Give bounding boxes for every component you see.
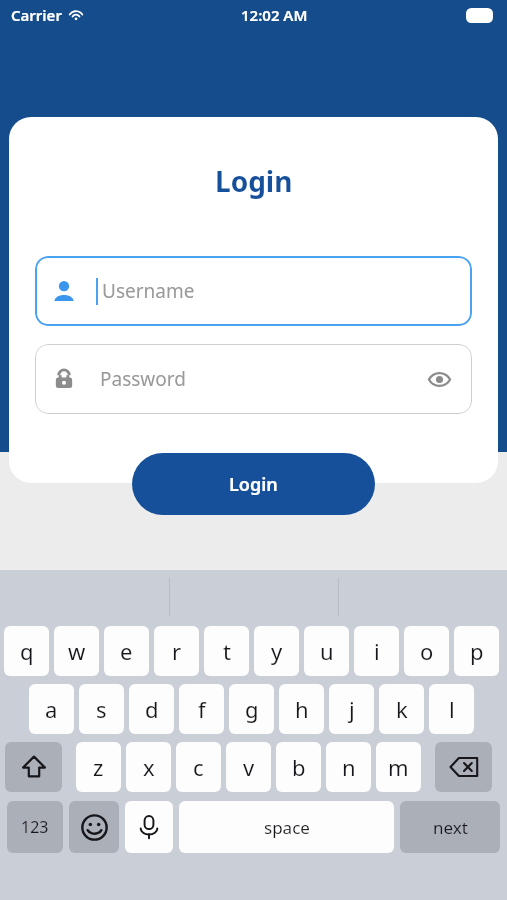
button[interactable]: c: [176, 742, 221, 792]
staticText: 12:02 AM: [241, 5, 308, 25]
staticText: z: [93, 752, 104, 782]
button[interactable]: l: [429, 684, 474, 734]
staticText: c: [193, 752, 204, 782]
staticText: 123: [21, 816, 49, 838]
staticText: y: [271, 636, 283, 666]
button[interactable]: z: [76, 742, 121, 792]
staticText: i: [374, 636, 380, 666]
button[interactable]: u: [304, 626, 349, 676]
staticText: l: [449, 694, 455, 724]
button[interactable]: 123: [7, 801, 63, 853]
button[interactable]: Backspace: [435, 742, 492, 792]
button[interactable]: Shift: [5, 742, 62, 792]
staticText: q: [20, 636, 34, 666]
button[interactable]: Username: [35, 256, 472, 326]
staticText: space: [264, 816, 310, 839]
staticText: Password: [100, 366, 186, 392]
staticText: v: [243, 752, 255, 782]
staticText: k: [396, 694, 408, 724]
staticText: s: [96, 694, 107, 724]
staticText: d: [145, 694, 159, 724]
staticText: h: [295, 694, 309, 724]
button[interactable]: j: [329, 684, 374, 734]
button[interactable]: Password: [35, 344, 472, 414]
staticText: w: [68, 636, 86, 666]
staticText: n: [342, 752, 356, 782]
button[interactable]: r: [154, 626, 199, 676]
button[interactable]: space: [179, 801, 394, 853]
button[interactable]: Voice input: [125, 801, 173, 853]
button[interactable]: d: [129, 684, 174, 734]
staticText: o: [420, 636, 434, 666]
button[interactable]: Emoji: [69, 801, 119, 853]
staticText: x: [143, 752, 155, 782]
button[interactable]: i: [354, 626, 399, 676]
staticText: t: [223, 636, 231, 666]
staticText: m: [388, 752, 409, 782]
button[interactable]: Login: [132, 453, 375, 515]
button[interactable]: s: [79, 684, 124, 734]
button[interactable]: x: [126, 742, 171, 792]
button[interactable]: m: [376, 742, 421, 792]
button[interactable]: n: [326, 742, 371, 792]
staticText: g: [245, 694, 259, 724]
staticText: b: [292, 752, 306, 782]
staticText: Login: [229, 472, 278, 497]
button[interactable]: Show password: [423, 363, 455, 395]
button[interactable]: b: [276, 742, 321, 792]
button[interactable]: v: [226, 742, 271, 792]
button[interactable]: f: [179, 684, 224, 734]
button[interactable]: p: [454, 626, 499, 676]
button[interactable]: a: [29, 684, 74, 734]
button[interactable]: h: [279, 684, 324, 734]
staticText: j: [349, 694, 355, 724]
staticText: r: [172, 636, 182, 666]
button[interactable]: t: [204, 626, 249, 676]
staticText: Username: [102, 278, 195, 304]
button[interactable]: k: [379, 684, 424, 734]
button[interactable]: y: [254, 626, 299, 676]
staticText: f: [198, 694, 206, 724]
staticText: p: [470, 636, 484, 666]
button[interactable]: next: [400, 801, 500, 853]
staticText: u: [320, 636, 334, 666]
staticText: next: [433, 816, 468, 839]
button[interactable]: g: [229, 684, 274, 734]
staticText: e: [120, 636, 133, 666]
button[interactable]: o: [404, 626, 449, 676]
button[interactable]: w: [54, 626, 99, 676]
button[interactable]: e: [104, 626, 149, 676]
staticText: Carrier: [11, 5, 62, 25]
staticText: Login: [215, 162, 293, 200]
button[interactable]: q: [4, 626, 49, 676]
staticText: a: [45, 694, 58, 724]
